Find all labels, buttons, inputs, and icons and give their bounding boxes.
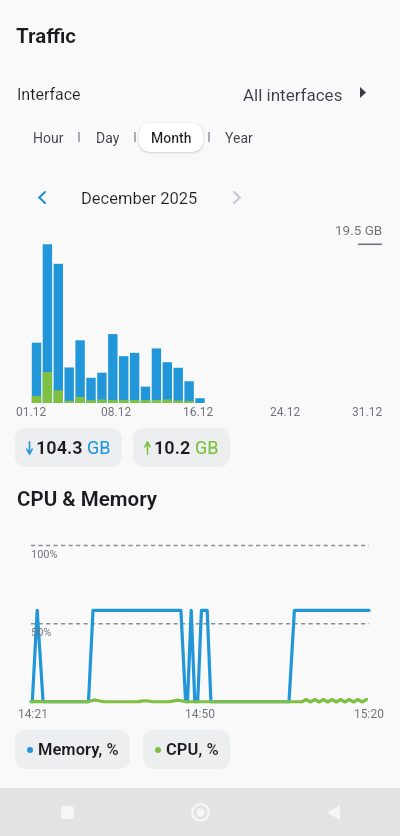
staticText: 15:20 [354, 707, 384, 721]
button[interactable]: Hour [23, 123, 74, 152]
staticText: 19.5 GB [335, 222, 383, 238]
button[interactable]: Previous month [27, 182, 57, 212]
button[interactable]: Interface [0, 74, 400, 110]
staticText: 01.12 [16, 405, 47, 419]
button[interactable]: Day [86, 123, 130, 152]
staticText: 16.12 [183, 405, 214, 419]
staticText: 100% [31, 548, 58, 561]
other: Choose interface [360, 87, 366, 98]
staticText: Day [96, 130, 120, 146]
button[interactable]: 104.3 [15, 428, 122, 467]
staticText: 104.3 [36, 437, 83, 458]
staticText: 14:50 [185, 707, 215, 721]
staticText: Memory, % [38, 740, 119, 759]
button[interactable]: Next month [222, 182, 252, 212]
staticText: December 2025 [81, 189, 198, 208]
staticText: Month [151, 130, 192, 146]
staticText: CPU & Memory [17, 487, 158, 511]
staticText: 24.12 [270, 405, 301, 419]
staticText: Traffic [16, 24, 76, 48]
button[interactable]: Memory, % [15, 730, 130, 769]
button[interactable]: Month [139, 123, 203, 152]
button[interactable]: 10.2 [133, 428, 230, 467]
staticText: Hour [33, 130, 64, 146]
staticText: GB [195, 437, 219, 458]
button[interactable]: Year [215, 123, 263, 152]
staticText: 08.12 [101, 405, 132, 419]
staticText: Year [225, 130, 253, 146]
staticText: All interfaces [243, 85, 343, 105]
staticText: Interface [17, 85, 81, 104]
staticText: GB [87, 437, 111, 458]
staticText: 31.12 [352, 405, 383, 419]
staticText: 14:21 [18, 707, 48, 721]
staticText: 50% [31, 626, 52, 639]
staticText: 10.2 [154, 437, 191, 458]
staticText: CPU, % [166, 740, 219, 759]
button[interactable]: CPU, % [143, 730, 230, 769]
